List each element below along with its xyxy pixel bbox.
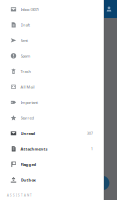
staticText: Sent (20, 38, 27, 43)
button[interactable]: Important (0, 95, 104, 110)
staticText: Spam (20, 53, 30, 58)
button[interactable]: Spam (0, 48, 104, 64)
staticText: Outbox (20, 177, 35, 182)
button[interactable]: Trash (0, 64, 104, 79)
button[interactable]: Flagged (0, 157, 104, 172)
staticText: Flagged (20, 162, 36, 167)
button[interactable]: Starred (0, 110, 104, 126)
button[interactable]: Sent (0, 33, 104, 48)
staticText: Important (20, 100, 37, 105)
button[interactable]: Draft (0, 17, 104, 33)
staticText: Attachments (20, 146, 47, 151)
staticText: All Mail (20, 84, 34, 89)
staticText: 1 (91, 147, 93, 151)
button[interactable]: Inbox (307) (0, 2, 104, 17)
staticText: Starred (20, 115, 33, 120)
staticText: Inbox (307) (20, 7, 38, 12)
button[interactable]: Unread (0, 126, 104, 141)
staticText: 307 (87, 131, 93, 136)
staticText: Draft (20, 22, 29, 27)
staticText: Unread (20, 131, 35, 136)
staticText: A S S I S T A N T (7, 194, 32, 197)
staticText: Trash (20, 69, 30, 74)
button[interactable]: All Mail (0, 79, 104, 95)
button[interactable]: Attachments (0, 141, 104, 157)
button[interactable]: Outbox (0, 172, 104, 188)
